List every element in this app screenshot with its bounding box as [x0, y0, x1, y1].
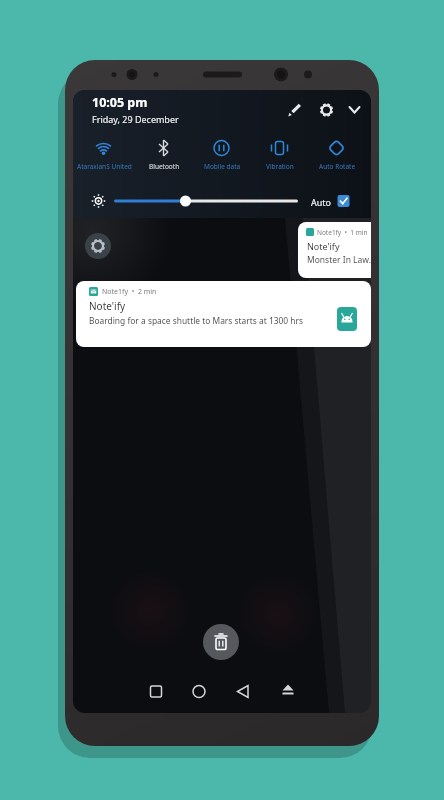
button[interactable] — [274, 679, 302, 707]
button[interactable] — [197, 132, 247, 174]
staticText: Boarding for a space shuttle to Mars sta… — [89, 315, 303, 326]
staticText: Note1fy • 1 min — [317, 228, 368, 237]
staticText: Vibration — [266, 162, 294, 171]
button[interactable] — [185, 679, 213, 707]
button[interactable] — [229, 679, 257, 707]
staticText: AtaraxianS United — [77, 162, 132, 171]
button[interactable] — [331, 189, 355, 213]
button[interactable] — [315, 98, 338, 122]
button[interactable] — [343, 98, 366, 122]
staticText: Monster In Law... — [307, 254, 371, 266]
button[interactable] — [203, 624, 239, 660]
staticText: Auto Rotate — [319, 162, 356, 171]
button[interactable]: Note1fy • 2 min — [76, 281, 371, 347]
button[interactable] — [139, 132, 189, 174]
button[interactable] — [255, 132, 305, 174]
button[interactable] — [85, 233, 111, 259]
button[interactable] — [312, 132, 362, 174]
staticText: Mobile data — [204, 162, 241, 171]
staticText: Bluetooth — [149, 162, 180, 171]
button[interactable] — [113, 189, 299, 213]
staticText: Note'ify — [89, 299, 126, 313]
staticText: Auto — [311, 196, 332, 208]
button[interactable] — [283, 98, 306, 122]
staticText: Note'ify — [307, 240, 340, 252]
button[interactable] — [79, 132, 129, 174]
staticText: Note1fy • 2 min — [102, 287, 157, 297]
staticText: Friday, 29 December — [92, 113, 179, 125]
button[interactable]: Note1fy • 1 min — [298, 222, 371, 278]
staticText: 10:05 pm — [92, 94, 148, 111]
button[interactable] — [143, 679, 171, 707]
